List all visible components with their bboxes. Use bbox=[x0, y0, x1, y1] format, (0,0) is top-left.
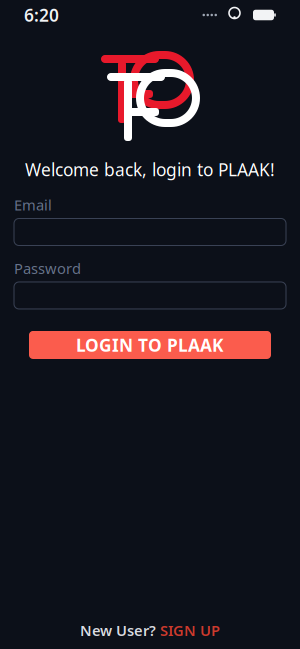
staticText: LOGIN TO PLAAK bbox=[76, 333, 224, 356]
staticText: Password bbox=[14, 258, 81, 278]
staticText: SIGN UP bbox=[160, 620, 220, 640]
button[interactable]: LOGIN TO PLAAK bbox=[29, 331, 271, 359]
button[interactable]: New User? bbox=[80, 620, 220, 640]
staticText: Email bbox=[14, 195, 52, 214]
staticText: New User? bbox=[80, 620, 156, 640]
staticText: Welcome back, login to PLAAK! bbox=[25, 158, 275, 181]
staticText: 6:20 bbox=[24, 3, 59, 26]
